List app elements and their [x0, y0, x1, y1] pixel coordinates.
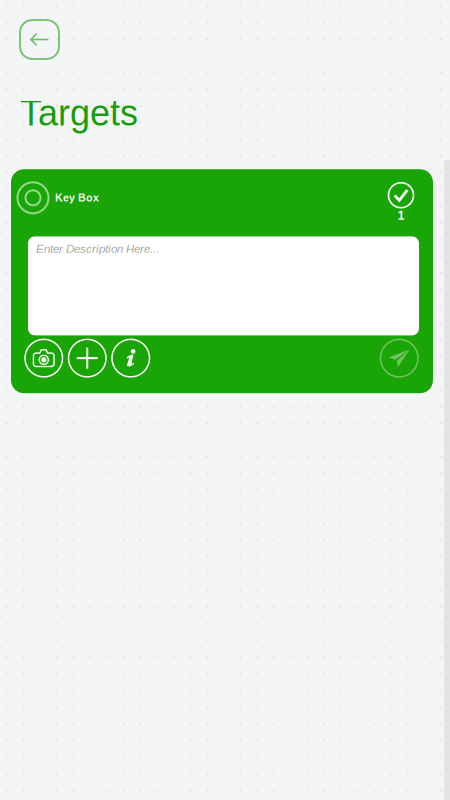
button[interactable]: Add [68, 339, 106, 377]
staticText: Targets [20, 93, 138, 133]
staticText: Enter Description Here... [36, 242, 159, 255]
staticText: Key Box [55, 192, 99, 204]
staticText: 1 [397, 208, 404, 222]
button[interactable]: Send [380, 339, 418, 377]
button[interactable]: Info [112, 339, 149, 377]
button[interactable]: Camera [25, 339, 62, 377]
button[interactable]: Back [20, 20, 59, 59]
